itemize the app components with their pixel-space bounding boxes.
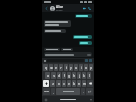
staticText: s [53, 74, 55, 78]
staticText: h [73, 74, 75, 78]
staticText: Alice [56, 5, 64, 9]
button[interactable]: b [72, 80, 76, 87]
staticText: p [90, 66, 92, 70]
staticText: m [83, 82, 86, 86]
button[interactable] [44, 20, 71, 27]
staticText: q [45, 66, 47, 70]
button[interactable]: Back [44, 6, 49, 11]
button[interactable]: Language [44, 98, 47, 101]
staticText: k [83, 74, 85, 78]
button[interactable]: Home [60, 99, 76, 100]
staticText: a [47, 74, 49, 78]
button[interactable]: i [79, 64, 83, 71]
staticText: o [85, 66, 87, 70]
staticText: c [63, 82, 65, 86]
button[interactable]: Video call [82, 6, 87, 11]
button[interactable]: j [77, 72, 81, 79]
button[interactable]: p [89, 64, 93, 71]
staticText: u [75, 66, 77, 70]
staticText: l [89, 74, 90, 78]
button[interactable]: q [43, 64, 48, 71]
button[interactable]: Keyboard action [85, 59, 88, 62]
button[interactable]: Call [87, 6, 92, 11]
staticText: w [50, 66, 53, 70]
button[interactable]: Keyboard action [89, 59, 92, 62]
button[interactable]: Period [81, 88, 85, 95]
button[interactable]: a [45, 72, 50, 79]
staticText: ?123 [44, 90, 49, 93]
button[interactable]: ?123 [43, 88, 50, 95]
button[interactable]: m [82, 80, 86, 87]
button[interactable]: v [67, 80, 71, 87]
button[interactable] [44, 29, 66, 33]
button[interactable]: d [57, 72, 61, 79]
button[interactable] [61, 48, 73, 51]
button[interactable]: f [62, 72, 66, 79]
staticText: n [78, 82, 80, 86]
button[interactable]: Space [56, 88, 80, 95]
button[interactable]: Shift [43, 80, 49, 87]
button[interactable] [44, 52, 92, 57]
staticText: x [58, 82, 60, 86]
button[interactable]: t [64, 64, 68, 71]
staticText: v [68, 82, 70, 86]
button[interactable]: y [69, 64, 73, 71]
button[interactable]: n [77, 80, 81, 87]
staticText: . [83, 90, 84, 93]
staticText: d [58, 74, 60, 78]
button[interactable]: g [67, 72, 71, 79]
button[interactable]: w [49, 64, 53, 71]
staticText: online [56, 9, 63, 12]
button[interactable]: h [72, 72, 76, 79]
button[interactable] [79, 41, 92, 45]
button[interactable]: k [82, 72, 86, 79]
button[interactable]: u [74, 64, 78, 71]
button[interactable]: s [51, 72, 56, 79]
staticText: f [64, 74, 65, 78]
staticText: g [68, 74, 70, 78]
button[interactable]: Comma [51, 88, 55, 95]
button[interactable]: Backspace [87, 80, 93, 87]
staticText: i [81, 66, 82, 70]
button[interactable]: Enter [86, 88, 93, 95]
staticText: y [70, 66, 72, 70]
button[interactable]: z [50, 80, 55, 87]
button[interactable]: r [59, 64, 63, 71]
button[interactable]: Emoji [43, 59, 46, 62]
button[interactable]: e [54, 64, 58, 71]
staticText: b [73, 82, 75, 86]
staticText: t [66, 66, 67, 70]
staticText: j [79, 74, 80, 78]
staticText: e [55, 66, 57, 70]
button[interactable] [73, 35, 92, 39]
button[interactable] [44, 48, 60, 51]
staticText: r [60, 66, 62, 70]
button[interactable]: o [84, 64, 88, 71]
button[interactable]: c [62, 80, 66, 87]
button[interactable]: x [56, 80, 61, 87]
button[interactable]: Voice input [89, 98, 92, 101]
staticText: z [52, 82, 54, 86]
button[interactable]: l [87, 72, 91, 79]
button[interactable] [75, 14, 92, 18]
